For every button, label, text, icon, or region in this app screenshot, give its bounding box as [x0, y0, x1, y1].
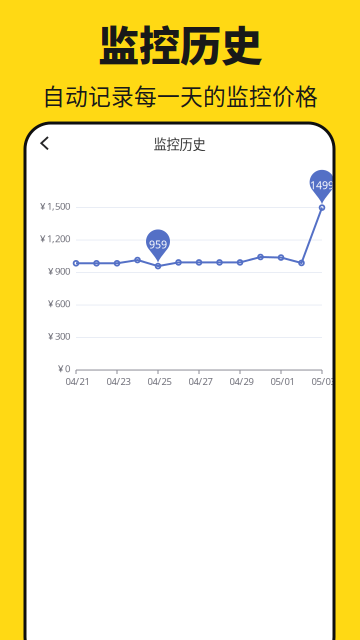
button[interactable]: Back [28, 129, 62, 163]
staticText: ¥ 900 [48, 264, 70, 278]
staticText: ¥ 0 [58, 362, 70, 375]
staticText: 05/01 [270, 375, 294, 388]
staticText: 监控历史 [98, 13, 262, 73]
staticText: 04/25 [147, 375, 171, 388]
staticText: 04/27 [188, 375, 212, 388]
staticText: 监控历史 [153, 134, 205, 153]
staticText: 05/03 [311, 375, 335, 388]
staticText: 1499 [310, 178, 334, 192]
staticText: ¥ 1,200 [40, 232, 70, 245]
staticText: ¥ 300 [48, 329, 70, 343]
staticText: 04/23 [106, 375, 130, 388]
staticText: 04/21 [65, 375, 89, 388]
staticText: 自动记录每一天的监控价格 [42, 79, 318, 111]
staticText: ¥ 600 [48, 297, 70, 310]
staticText: 959 [149, 237, 167, 251]
staticText: 04/29 [229, 375, 253, 388]
staticText: ¥ 1,500 [40, 199, 70, 213]
